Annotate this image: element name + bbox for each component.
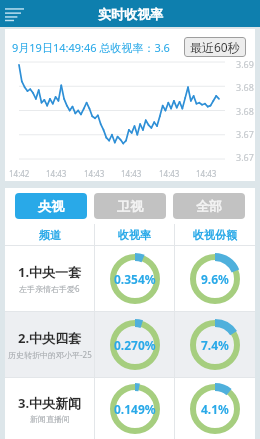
staticText: 收视份额	[193, 228, 237, 242]
staticText: 3.67	[236, 151, 254, 163]
staticText: 最近60秒	[190, 39, 240, 55]
staticText: 14:43	[196, 168, 217, 179]
staticText: 实时收视率	[98, 6, 163, 22]
button[interactable]: Menu	[3, 2, 27, 26]
staticText: 全部	[196, 198, 222, 214]
staticText: 频道	[39, 228, 61, 242]
staticText: 左手亲情右手爱6	[19, 283, 80, 294]
staticText: 新闻直播间	[30, 414, 70, 424]
staticText: 14:42	[9, 168, 30, 179]
staticText: 1.中央一套	[18, 263, 82, 281]
staticText: 7.4%	[201, 337, 229, 353]
staticText: 3.中央新闻	[18, 394, 82, 412]
staticText: 历史转折中的邓小平-25	[8, 349, 92, 360]
staticText: 14:43	[84, 168, 105, 179]
button[interactable]: 1.中央一套	[5, 246, 255, 311]
button[interactable]: 全部	[173, 193, 245, 219]
staticText: 2.中央四套	[18, 329, 82, 347]
staticText: 0.354%	[114, 271, 156, 287]
button[interactable]: 3.中央新闻	[5, 378, 255, 439]
button[interactable]: 央视	[15, 193, 87, 219]
staticText: 卫视	[117, 198, 143, 214]
staticText: 0.149%	[114, 401, 156, 417]
staticText: 9.6%	[201, 271, 229, 287]
button[interactable]: 2.中央四套	[5, 312, 255, 377]
staticText: 14:43	[46, 168, 67, 179]
staticText: 收视率	[118, 228, 151, 242]
staticText: 14:43	[121, 168, 142, 179]
staticText: 0.270%	[114, 337, 156, 353]
staticText: 央视	[38, 198, 64, 214]
staticText: 3.67	[236, 128, 254, 140]
staticText: 14:43	[159, 168, 180, 179]
button[interactable]: 卫视	[94, 193, 166, 219]
staticText: 4.1%	[201, 401, 229, 417]
staticText: 3.69	[236, 58, 254, 70]
staticText: 3.68	[236, 105, 254, 117]
staticText: 3.68	[236, 81, 254, 93]
button[interactable]: 最近60秒	[184, 37, 246, 57]
staticText: 9月19日14:49:46 总收视率：3.6	[12, 40, 170, 55]
